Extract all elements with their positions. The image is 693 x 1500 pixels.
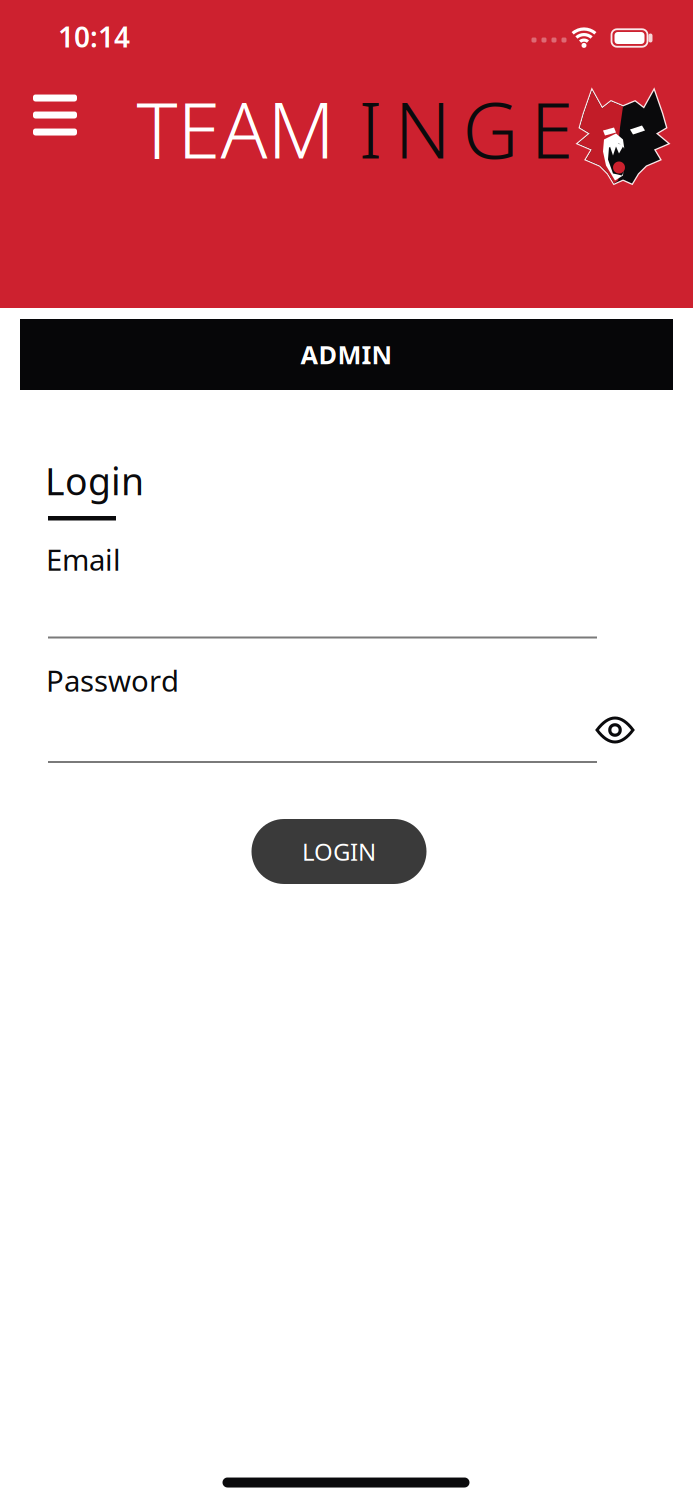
staticText: I — [358, 77, 382, 180]
staticText: LOGIN — [302, 836, 376, 867]
staticText: Password — [46, 661, 179, 700]
staticText: N — [394, 77, 450, 180]
button[interactable]: Menu — [25, 86, 85, 143]
staticText: Email — [46, 540, 121, 579]
button[interactable]: LOGIN — [251, 819, 426, 884]
button[interactable]: ADMIN — [20, 319, 673, 390]
staticText: Login — [45, 456, 144, 506]
staticText: TEAM — [136, 77, 334, 180]
staticText: E — [530, 77, 573, 180]
staticText: ADMIN — [300, 338, 392, 371]
staticText: G — [462, 77, 518, 180]
button[interactable]: Show password — [590, 710, 640, 750]
staticText: 10:14 — [58, 18, 130, 55]
